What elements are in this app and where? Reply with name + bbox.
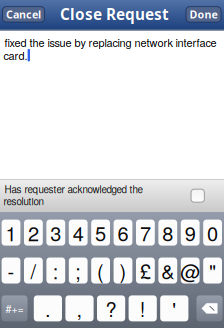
- button[interactable]: 0: [203, 220, 222, 246]
- button[interactable]: &: [158, 257, 177, 283]
- staticText: resolution: [4, 194, 44, 208]
- button[interactable]: -: [2, 257, 20, 283]
- staticText: ;: [75, 256, 81, 285]
- staticText: fixed the issue by replacing network int…: [4, 34, 216, 50]
- staticText: (: [97, 256, 104, 285]
- button[interactable]: Delete: [196, 295, 222, 321]
- button[interactable]: ": [203, 257, 222, 283]
- button[interactable]: :: [46, 257, 65, 283]
- button[interactable]: ': [160, 295, 188, 321]
- staticText: £: [140, 256, 151, 285]
- staticText: ?: [106, 294, 117, 323]
- staticText: Close Request: [60, 4, 169, 24]
- staticText: 4: [73, 218, 84, 247]
- staticText: ": [209, 256, 216, 285]
- button[interactable]: ): [114, 257, 132, 283]
- staticText: 9: [185, 218, 196, 247]
- button[interactable]: 9: [181, 220, 200, 246]
- button[interactable]: #+=: [1, 295, 27, 321]
- button[interactable]: ;: [69, 257, 88, 283]
- button[interactable]: 2: [24, 220, 43, 246]
- button[interactable]: @: [181, 257, 200, 283]
- staticText: ): [119, 256, 126, 285]
- button[interactable]: 1: [2, 220, 20, 246]
- staticText: Has requester acknowledged the: [5, 182, 143, 196]
- staticText: @: [180, 256, 200, 285]
- button[interactable]: (: [91, 257, 110, 283]
- staticText: :: [53, 256, 59, 285]
- button[interactable]: ,: [65, 295, 94, 321]
- staticText: 0: [207, 218, 218, 247]
- button[interactable]: 4: [69, 220, 88, 246]
- staticText: 7: [140, 218, 151, 247]
- staticText: 8: [162, 218, 173, 247]
- staticText: 5: [95, 218, 106, 247]
- button[interactable]: 5: [91, 220, 110, 246]
- staticText: -: [7, 256, 14, 285]
- staticText: &: [161, 256, 174, 285]
- button[interactable]: /: [24, 257, 43, 283]
- staticText: 6: [117, 218, 128, 247]
- staticText: .: [45, 294, 51, 323]
- staticText: Cancel: [6, 7, 41, 22]
- button[interactable]: Cancel: [2, 7, 44, 22]
- staticText: ,: [76, 294, 82, 323]
- button[interactable]: .: [34, 295, 62, 321]
- button[interactable]: Done: [186, 7, 221, 22]
- staticText: 3: [50, 218, 61, 247]
- button[interactable]: ?: [97, 295, 125, 321]
- button[interactable]: 3: [46, 220, 65, 246]
- button[interactable]: £: [136, 257, 155, 283]
- button[interactable]: 7: [136, 220, 155, 246]
- button[interactable]: !: [129, 295, 157, 321]
- staticText: /: [30, 256, 36, 285]
- staticText: !: [140, 294, 146, 323]
- staticText: Done: [189, 7, 217, 22]
- staticText: 2: [28, 218, 39, 247]
- staticText: card.: [3, 47, 27, 63]
- button[interactable]: 8: [158, 220, 177, 246]
- staticText: 1: [5, 218, 16, 247]
- button[interactable]: 6: [114, 220, 132, 246]
- staticText: #+=: [5, 301, 23, 316]
- button[interactable]: Has requester acknowledged the resolutio…: [191, 189, 204, 202]
- staticText: ': [172, 294, 176, 323]
